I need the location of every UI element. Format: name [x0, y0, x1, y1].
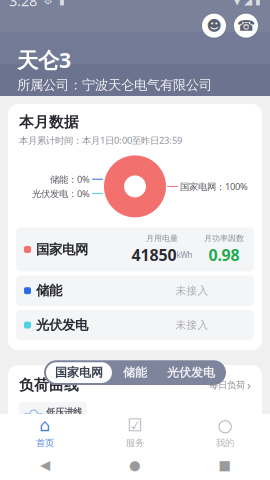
staticText: 国家电网：100%: [180, 180, 248, 193]
button[interactable]: 每日负荷: [209, 377, 251, 393]
button[interactable]: 国家电网: [46, 362, 112, 383]
staticText: 41850: [131, 244, 176, 265]
button[interactable]: Back: [0, 450, 90, 480]
button[interactable]: 储能: [112, 362, 158, 383]
staticText: 月用电量: [146, 233, 178, 243]
staticText: 储能：0%: [50, 173, 90, 185]
staticText: kWh: [176, 249, 192, 260]
staticText: 服务: [126, 437, 144, 449]
staticText: 负荷曲线: [19, 376, 79, 394]
staticText: 低压进线: [46, 406, 82, 418]
staticText: 每日负荷: [209, 379, 245, 391]
staticText: 光伏发电: [36, 317, 88, 333]
staticText: ◀: [40, 457, 50, 472]
button[interactable]: ○: [180, 414, 270, 450]
staticText: 天仑3: [17, 46, 71, 74]
staticText: ›: [247, 377, 251, 393]
staticText: ⚙ ▮: [37, 0, 65, 7]
staticText: ■: [218, 457, 231, 472]
staticText: 所属公司：宁波天仑电气有限公司: [17, 77, 212, 93]
button[interactable]: Home: [90, 450, 180, 480]
button[interactable]: Recents: [180, 450, 270, 480]
staticText: 本月数据: [19, 113, 79, 131]
staticText: ○: [217, 415, 232, 435]
staticText: ⌂: [39, 415, 50, 435]
staticText: ☑: [127, 415, 143, 435]
button[interactable]: Call: [234, 14, 258, 38]
staticText: 3:28: [9, 0, 37, 10]
staticText: ☎: [237, 17, 255, 34]
staticText: –○–: [24, 405, 43, 419]
staticText: 首页: [36, 437, 54, 449]
staticText: ●: [129, 457, 141, 472]
button[interactable]: ☑: [90, 414, 180, 450]
staticText: ▼ ◢ ▮: [233, 0, 261, 7]
staticText: 光伏发电：0%: [32, 187, 90, 200]
button[interactable]: Messages: [202, 14, 226, 38]
staticText: 国家电网: [55, 365, 103, 380]
staticText: 0.98: [208, 244, 239, 265]
staticText: 光伏发电: [167, 365, 215, 380]
button[interactable]: ⌂: [0, 414, 90, 450]
staticText: 未接入: [175, 284, 208, 297]
staticText: 我的: [216, 437, 234, 449]
staticText: 国家电网: [36, 241, 88, 258]
button[interactable]: 光伏发电: [158, 362, 224, 383]
staticText: 储能: [36, 282, 62, 299]
staticText: ☻: [206, 17, 221, 34]
staticText: 本月累计时间：本月1日0:00至昨日23:59: [19, 134, 182, 146]
staticText: 储能: [123, 365, 147, 380]
staticText: 未接入: [175, 318, 208, 332]
staticText: 月功率因数: [204, 233, 244, 243]
